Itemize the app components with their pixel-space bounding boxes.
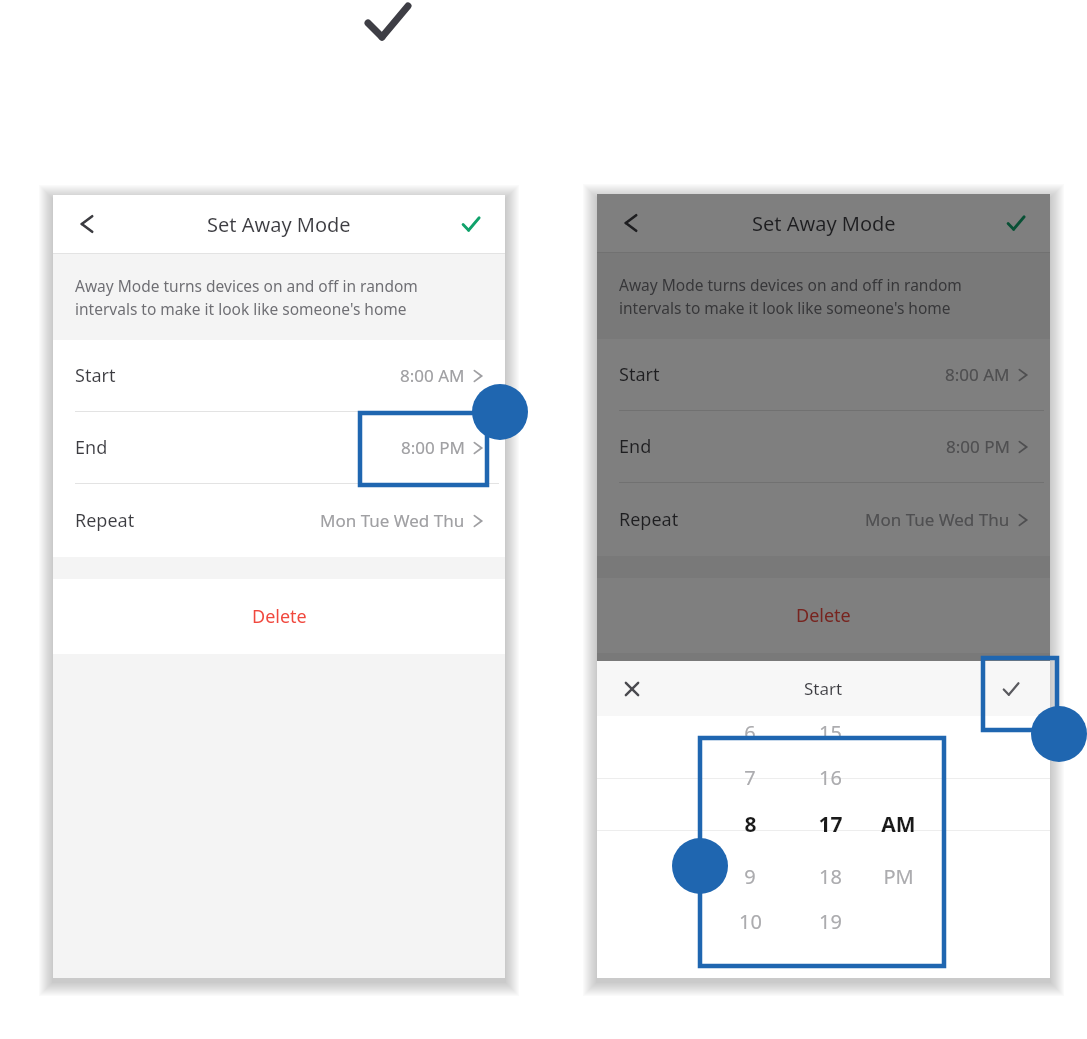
staticText: Away Mode turns devices on and off in ra… [619,274,962,319]
staticText: 7 [744,764,756,791]
staticText: Delete [252,604,307,629]
button[interactable]: 19 [790,901,870,941]
staticText: End [75,435,108,460]
staticText: 8:00 PM [946,435,1010,458]
button[interactable]: End [597,411,1050,482]
button[interactable]: 6 [710,712,790,752]
button[interactable]: Delete [53,579,505,654]
staticText: 19 [819,908,842,935]
button[interactable]: Delete [597,578,1050,653]
button[interactable]: 15 [790,712,870,752]
button[interactable]: AM [858,804,938,844]
staticText: Repeat [75,508,135,533]
staticText: 9 [744,863,756,890]
button[interactable]: 9 [710,856,790,896]
staticText: PM [883,863,914,890]
staticText: AM [881,810,916,839]
staticText: 8 [744,810,757,839]
button[interactable]: Start [597,339,1050,410]
button[interactable]: Back [611,203,651,243]
staticText: 6 [744,719,756,746]
staticText: Repeat [619,507,679,532]
staticText: Start [804,677,843,700]
staticText: Away Mode turns devices on and off in ra… [75,275,418,320]
staticText: 15 [819,719,842,746]
button[interactable]: PM [858,856,938,896]
button[interactable]: Confirm [996,203,1036,243]
button[interactable]: Confirm [451,204,491,244]
button[interactable]: Repeat [53,484,505,557]
button[interactable]: Confirm time [992,670,1030,708]
button[interactable]: Start [53,340,505,411]
staticText: Mon Tue Wed Thu [865,508,1010,531]
button[interactable]: Repeat [597,483,1050,556]
staticText: Start [75,363,116,388]
staticText: 17 [818,810,843,839]
button[interactable]: 18 [790,856,870,896]
button[interactable]: 10 [710,901,790,941]
button[interactable]: 7 [710,757,790,797]
staticText: 16 [819,764,842,791]
staticText: 8:00 PM [401,436,465,459]
button[interactable]: End [53,412,505,483]
button[interactable]: 8 [710,804,790,844]
button[interactable]: Close [613,670,651,708]
staticText: 8:00 AM [400,364,465,387]
staticText: 18 [819,863,842,890]
staticText: 10 [739,908,762,935]
button[interactable]: Back [67,204,107,244]
staticText: 8:00 AM [945,363,1010,386]
staticText: Mon Tue Wed Thu [320,509,465,532]
button[interactable]: 17 [790,804,870,844]
staticText: Set Away Mode [207,211,351,238]
staticText: End [619,434,652,459]
staticText: Start [619,362,660,387]
staticText: Set Away Mode [752,210,896,237]
staticText: Delete [796,603,851,628]
button[interactable]: 16 [790,757,870,797]
